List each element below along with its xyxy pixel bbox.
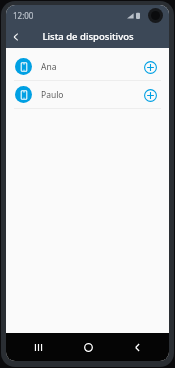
button[interactable]: Add device Paulo bbox=[140, 85, 160, 105]
button[interactable]: Back bbox=[6, 27, 26, 47]
button[interactable]: Ana bbox=[6, 53, 169, 80]
staticText: Lista de dispositivos bbox=[42, 30, 134, 43]
button[interactable]: Recent apps bbox=[21, 333, 55, 361]
button[interactable]: Paulo bbox=[6, 81, 169, 108]
staticText: Ana bbox=[41, 61, 140, 73]
button[interactable]: Add device Ana bbox=[140, 57, 160, 77]
staticText: Paulo bbox=[41, 89, 140, 101]
staticText: 12:00 bbox=[13, 10, 34, 21]
button[interactable]: Back bbox=[120, 333, 154, 361]
button[interactable]: Home bbox=[71, 333, 105, 361]
